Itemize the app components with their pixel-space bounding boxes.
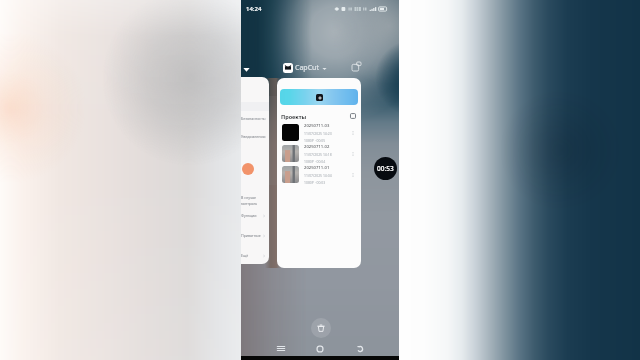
- button[interactable]: Ещё: [241, 252, 266, 259]
- staticText: 14:24: [246, 5, 262, 13]
- staticText: контроль: [241, 201, 258, 206]
- button[interactable]: Проекты: [277, 78, 361, 268]
- staticText: В случае: [241, 195, 257, 200]
- staticText: 00:53: [377, 164, 394, 173]
- staticText: Ещё: [241, 253, 249, 258]
- staticText: 20250711-02: [304, 144, 330, 150]
- button[interactable]: Функции: [241, 212, 266, 219]
- button[interactable]: [280, 89, 358, 105]
- staticText: 11/07/2025 14:18: [304, 152, 332, 157]
- staticText: Безопасность: [241, 116, 265, 121]
- button[interactable]: 20250711-01: [277, 164, 361, 185]
- button[interactable]: Приватные: [241, 232, 266, 239]
- staticText: CapCut: [295, 63, 319, 73]
- staticText: 1080P · 00:05: [304, 138, 326, 143]
- button[interactable]: Clear all: [311, 318, 331, 338]
- button[interactable]: Split screen: [350, 60, 363, 73]
- button[interactable]: More options: [349, 171, 357, 179]
- staticText: Приватные: [241, 233, 261, 238]
- staticText: Уведомления: [241, 134, 265, 139]
- staticText: 1080P · 00:03: [304, 180, 326, 185]
- button[interactable]: More options: [349, 129, 357, 137]
- button[interactable]: Безопасность: [241, 115, 266, 122]
- button[interactable]: 20250711-02: [277, 143, 361, 164]
- button[interactable]: Безопасность: [241, 77, 269, 264]
- button[interactable]: 20250711-03: [277, 122, 361, 143]
- staticText: Функции: [241, 213, 257, 218]
- staticText: 20250711-03: [304, 123, 330, 129]
- staticText: Проекты: [281, 113, 307, 120]
- staticText: 11/07/2025 14:04: [304, 173, 332, 178]
- button[interactable]: Home: [311, 341, 329, 356]
- button[interactable]: Уведомления: [241, 133, 266, 140]
- button[interactable]: Select projects: [349, 112, 357, 120]
- button[interactable]: More options: [349, 150, 357, 158]
- staticText: 1080P · 00:04: [304, 159, 326, 164]
- button[interactable]: Back: [351, 341, 369, 356]
- staticText: 11/07/2025 14:23: [304, 131, 332, 136]
- staticText: 20250711-01: [304, 165, 330, 171]
- button[interactable]: Recents: [272, 341, 290, 356]
